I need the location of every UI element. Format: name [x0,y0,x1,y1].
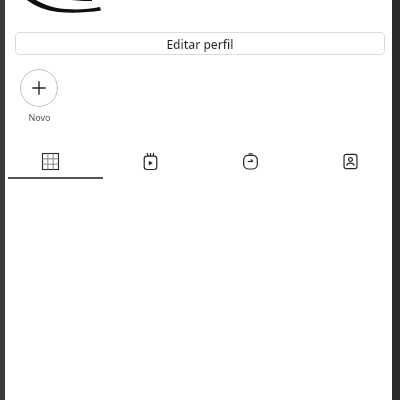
button[interactable]: Guides [200,145,300,177]
staticText: Novo [28,111,51,123]
button[interactable]: Tagged photos [300,145,400,177]
button[interactable]: Video posts [100,145,200,177]
staticText: Editar perfil [166,36,234,52]
button[interactable]: Grid posts [0,145,100,177]
button[interactable]: Editar perfil [15,32,385,55]
button[interactable]: Novo [20,69,58,123]
